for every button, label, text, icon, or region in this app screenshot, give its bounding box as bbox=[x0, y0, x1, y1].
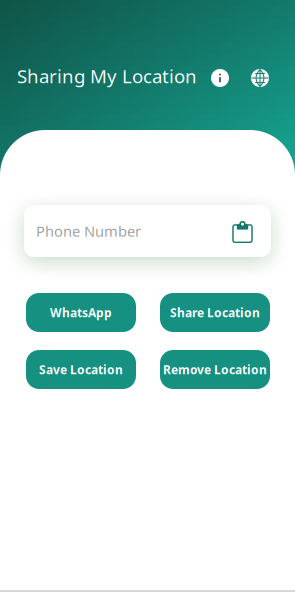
button[interactable]: Change language bbox=[251, 69, 269, 87]
button[interactable]: Save Location bbox=[26, 350, 136, 389]
staticText: Sharing My Location bbox=[17, 64, 197, 88]
button[interactable]: Phone Number bbox=[24, 205, 271, 257]
button[interactable]: Information bbox=[211, 69, 229, 87]
staticText: WhatsApp bbox=[50, 304, 112, 320]
button[interactable]: WhatsApp bbox=[26, 293, 136, 332]
button[interactable]: Share Location bbox=[160, 293, 270, 332]
staticText: Share Location bbox=[170, 304, 260, 320]
staticText: Save Location bbox=[39, 361, 123, 377]
staticText: Remove Location bbox=[163, 361, 267, 377]
button[interactable]: Remove Location bbox=[160, 350, 270, 389]
staticText: Phone Number bbox=[36, 221, 141, 241]
